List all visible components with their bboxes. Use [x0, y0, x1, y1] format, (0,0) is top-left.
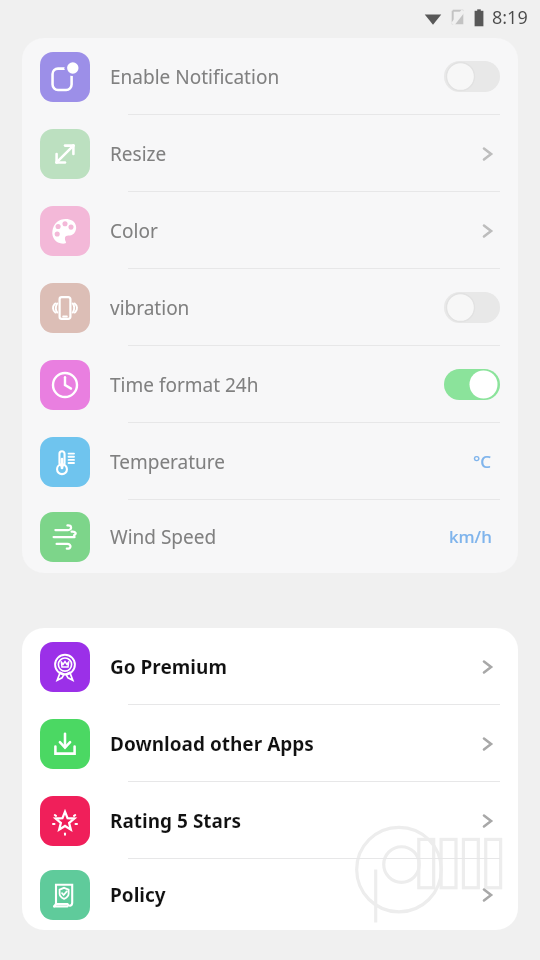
other: Open [478, 733, 500, 755]
staticText: Time format 24h [110, 372, 259, 398]
button[interactable]: Resize [22, 115, 518, 192]
button[interactable]: vibration [22, 269, 518, 346]
staticText: °C [473, 450, 492, 473]
button[interactable]: Go Premium [22, 628, 518, 705]
staticText: Policy [110, 882, 166, 908]
other: Open [478, 220, 500, 242]
button[interactable]: Policy [22, 859, 518, 930]
button[interactable]: Wind Speed [22, 500, 518, 573]
staticText: km/h [449, 525, 492, 548]
staticText: Color [110, 218, 158, 244]
button[interactable]: Color [22, 192, 518, 269]
staticText: Rating 5 Stars [110, 808, 242, 834]
staticText: vibration [110, 295, 190, 321]
button[interactable]: Toggle [444, 369, 500, 400]
other: Open [478, 884, 500, 906]
staticText: 8:19 [492, 5, 528, 30]
staticText: Go Premium [110, 654, 227, 680]
staticText: Download other Apps [110, 731, 314, 757]
button[interactable]: Toggle [444, 61, 500, 92]
button[interactable]: Toggle [444, 292, 500, 323]
button[interactable]: Rating 5 Stars [22, 782, 518, 859]
staticText: Temperature [110, 449, 226, 475]
button[interactable]: Download other Apps [22, 705, 518, 782]
button[interactable]: Temperature [22, 423, 518, 500]
other: Open [478, 143, 500, 165]
staticText: Enable Notification [110, 64, 280, 90]
staticText: Wind Speed [110, 524, 217, 550]
button[interactable]: Time format 24h [22, 346, 518, 423]
button[interactable]: Enable Notification [22, 38, 518, 115]
other: Open [478, 810, 500, 832]
other: Open [478, 656, 500, 678]
staticText: Resize [110, 141, 167, 167]
